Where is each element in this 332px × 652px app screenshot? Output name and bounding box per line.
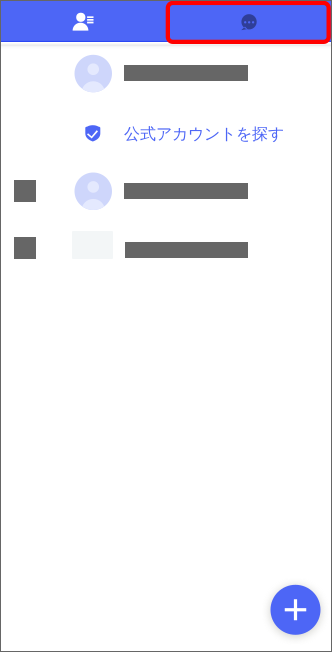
button[interactable]: 公式アカウントを探す [85,116,332,150]
button[interactable]: Chats [166,1,331,42]
button[interactable]: New chat [270,585,320,635]
staticText: 公式アカウントを探す [124,124,284,144]
button[interactable]: Friends [1,1,166,42]
